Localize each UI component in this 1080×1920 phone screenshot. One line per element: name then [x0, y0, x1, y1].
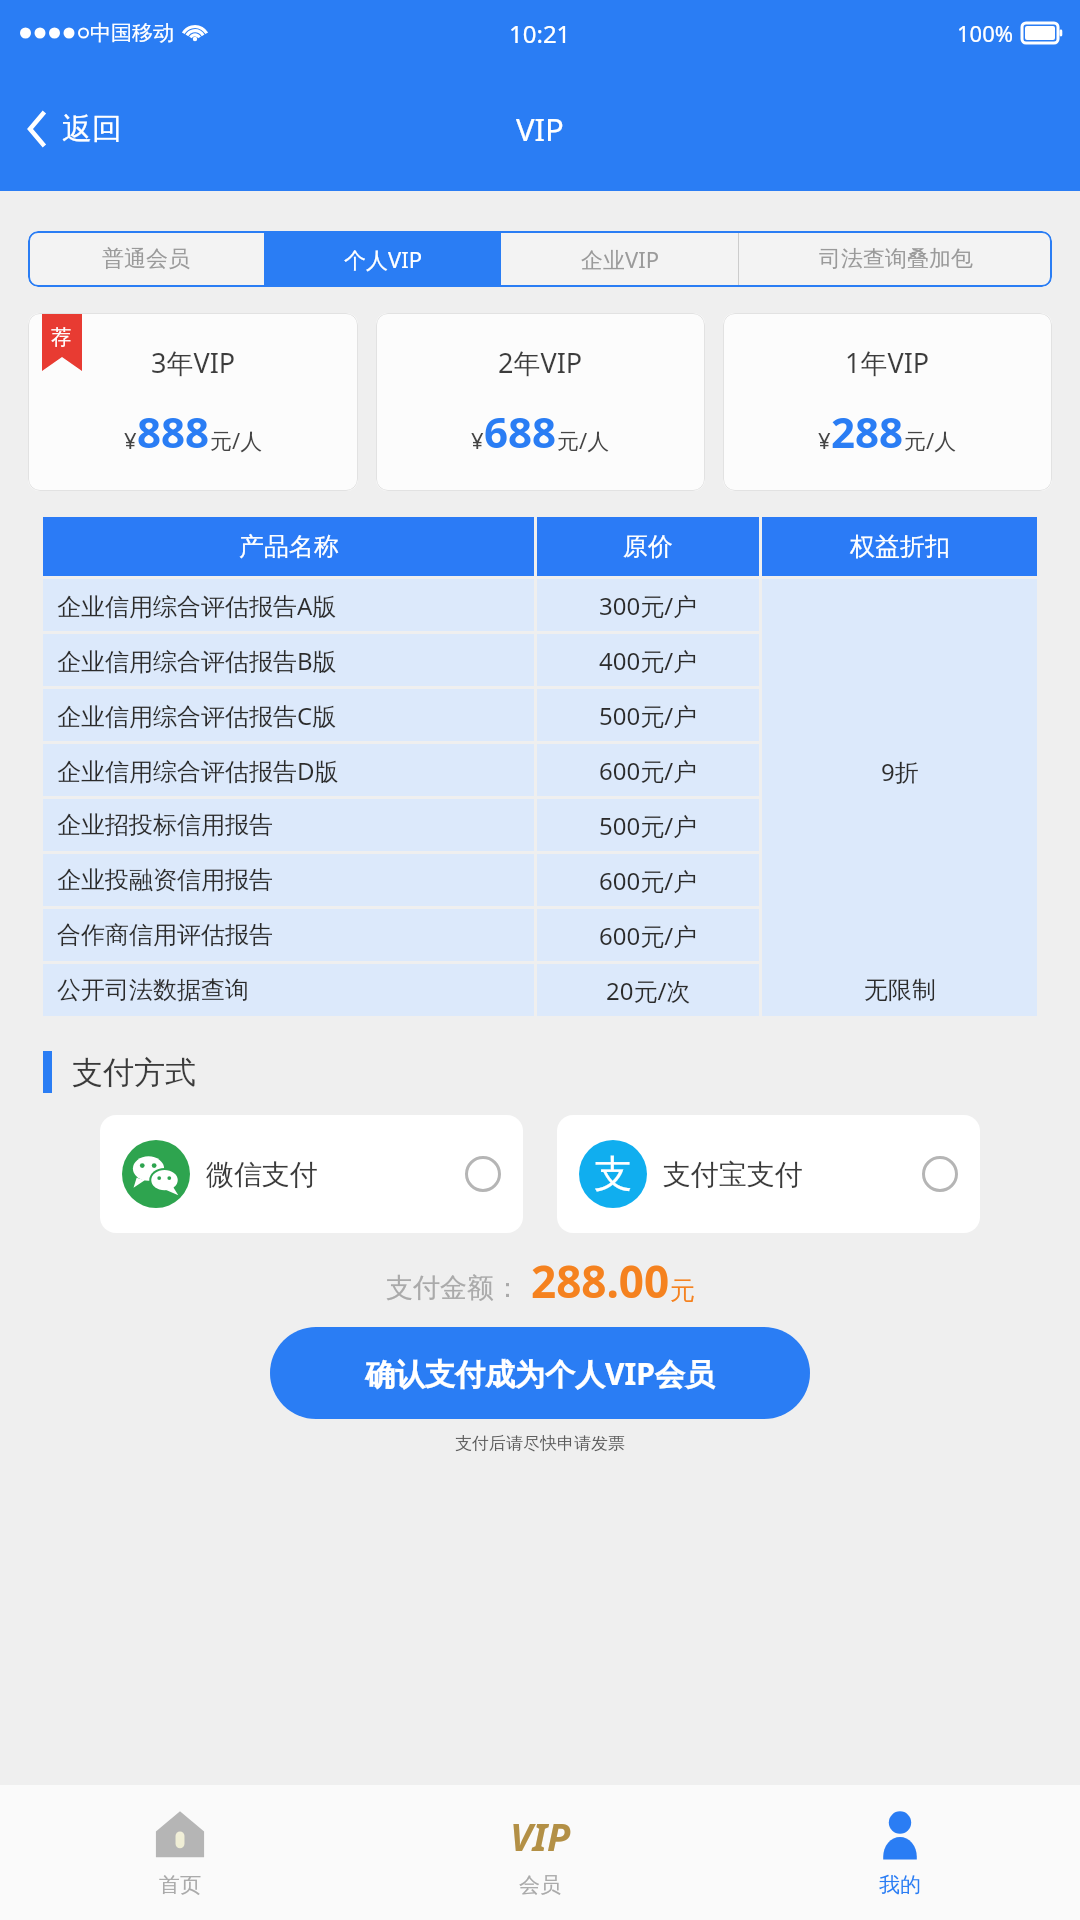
staticText: 首页	[159, 1872, 201, 1898]
button[interactable]: 普通会员	[28, 231, 264, 287]
staticText: VIP	[510, 1810, 571, 1862]
staticText: 688	[484, 403, 557, 460]
staticText: 企业投融资信用报告	[57, 865, 273, 895]
staticText: 288.00	[531, 1251, 670, 1311]
staticText: ¥	[818, 425, 831, 455]
staticText: 元/人	[557, 425, 610, 455]
staticText: 支付宝支付	[663, 1157, 922, 1192]
staticText: 9折	[881, 755, 919, 788]
button[interactable]: 我的	[720, 1785, 1080, 1920]
staticText: ¥	[124, 425, 137, 455]
button[interactable]: 支	[557, 1115, 980, 1233]
staticText: 1年VIP	[845, 344, 930, 381]
staticText: 500元/户	[599, 809, 698, 842]
button[interactable]: 司法查询叠加包	[739, 231, 1052, 287]
staticText: 600元/户	[599, 919, 698, 952]
staticText: 司法查询叠加包	[819, 245, 973, 273]
staticText: 支付后请尽快申请发票	[0, 1433, 1080, 1454]
button[interactable]: 返回	[0, 66, 146, 191]
staticText: 支	[594, 1150, 632, 1198]
staticText: 2年VIP	[498, 344, 583, 381]
staticText: 普通会员	[102, 245, 190, 273]
button[interactable]: 个人VIP	[264, 231, 501, 287]
staticText: 合作商信用评估报告	[57, 920, 273, 950]
staticText: 企业信用综合评估报告C版	[57, 699, 337, 732]
button[interactable]: 微信支付	[100, 1115, 523, 1233]
staticText: VIP	[516, 108, 564, 150]
staticText: 中国移动	[90, 20, 174, 46]
button[interactable]: 1年VIP	[723, 313, 1052, 491]
staticText: 企业招投标信用报告	[57, 810, 273, 840]
staticText: 返回	[62, 110, 122, 148]
staticText: 20元/次	[606, 974, 691, 1007]
staticText: 产品名称	[239, 531, 339, 562]
staticText: 荐	[51, 325, 71, 350]
staticText: 个人VIP	[344, 244, 422, 274]
staticText: 无限制	[864, 975, 936, 1005]
staticText: 100%	[957, 18, 1014, 48]
staticText: 元	[670, 1275, 695, 1306]
staticText: 支付金额：	[386, 1271, 521, 1305]
button[interactable]: 会员	[360, 1785, 720, 1920]
staticText: 原价	[623, 531, 673, 562]
button[interactable]: 3年VIP	[28, 313, 358, 491]
staticText: 600元/户	[599, 864, 698, 897]
button[interactable]: 2年VIP	[376, 313, 705, 491]
staticText: 288	[831, 403, 904, 460]
staticText: 3年VIP	[151, 344, 236, 381]
button[interactable]: 确认支付成为个人VIP会员	[270, 1327, 810, 1419]
button[interactable]: 企业VIP	[501, 231, 738, 287]
staticText: 500元/户	[599, 699, 698, 732]
staticText: 元/人	[904, 425, 957, 455]
staticText: 确认支付成为个人VIP会员	[365, 1353, 715, 1394]
staticText: 企业VIP	[581, 244, 659, 274]
staticText: 我的	[879, 1872, 921, 1898]
staticText: ¥	[471, 425, 484, 455]
staticText: 企业信用综合评估报告B版	[57, 644, 337, 677]
staticText: 企业信用综合评估报告D版	[57, 754, 339, 787]
staticText: 支付方式	[72, 1053, 196, 1092]
staticText: 会员	[519, 1872, 561, 1898]
staticText: 600元/户	[599, 754, 698, 787]
staticText: 300元/户	[599, 589, 698, 622]
staticText: 微信支付	[206, 1157, 465, 1192]
staticText: 400元/户	[599, 644, 698, 677]
staticText: 元/人	[210, 425, 263, 455]
staticText: 权益折扣	[850, 531, 950, 562]
staticText: 10:21	[509, 17, 571, 50]
staticText: 888	[137, 403, 210, 460]
button[interactable]: 首页	[0, 1785, 360, 1920]
staticText: 企业信用综合评估报告A版	[57, 589, 337, 622]
staticText: 公开司法数据查询	[57, 975, 249, 1005]
